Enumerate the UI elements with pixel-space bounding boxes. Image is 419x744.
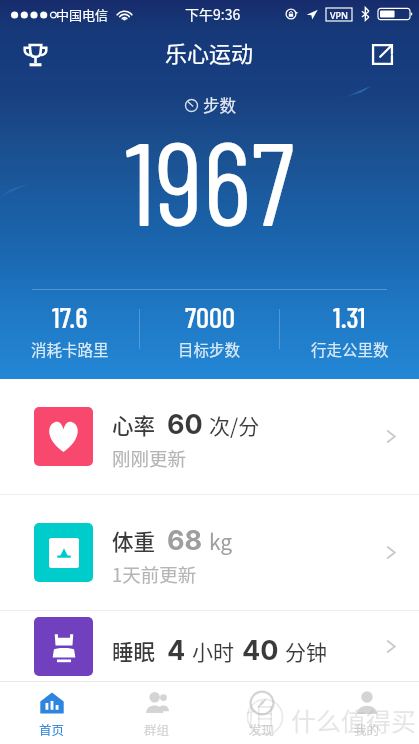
staticText: 中国电信 [56,5,109,24]
staticText: 分钟 [285,636,327,666]
button[interactable]: 首页 [0,682,104,744]
button[interactable]: 7000 [140,285,279,374]
staticText: 下午9:36 [185,4,241,24]
staticText: 1.31 [333,299,366,334]
staticText: 目标步数 [178,338,241,360]
staticText: 睡眠 [112,635,156,666]
button[interactable]: 我的 [314,682,419,744]
staticText: 发现 [249,720,275,738]
button[interactable]: Share [360,32,404,76]
staticText: 1天前更新 [112,561,197,588]
staticText: 心率 [112,409,156,440]
button[interactable]: 心率 [0,379,419,494]
staticText: 消耗卡路里 [31,338,109,360]
staticText: 4 [167,634,186,667]
staticText: 行走公里数 [311,338,389,360]
button[interactable]: 17.6 [0,285,139,374]
staticText: 68 [167,524,203,557]
staticText: 17.6 [52,299,88,334]
staticText: 次/分 [209,410,260,440]
staticText: VPN [330,9,349,21]
button[interactable]: 1.31 [280,285,419,374]
staticText: 什么值得买 [291,702,417,738]
button[interactable]: 群组 [104,682,209,744]
staticText: 乐心运动 [165,36,254,68]
button[interactable]: Achievements [13,32,57,76]
staticText: 体重 [112,525,156,556]
staticText: 60 [167,408,203,441]
staticText: 小时 [192,636,234,666]
button[interactable]: 发现 [209,682,314,744]
staticText: 1967 [125,108,295,250]
staticText: 群组 [144,720,170,738]
staticText: 步数 [203,93,236,117]
staticText: 首页 [39,720,65,738]
staticText: 刚刚更新 [112,445,187,472]
staticText: kg [209,526,233,556]
button[interactable]: 体重 [0,495,419,610]
staticText: 7000 [185,299,235,334]
staticText: 40 [242,634,279,667]
button[interactable]: 睡眠 [0,611,419,681]
staticText: 我的 [354,720,380,738]
